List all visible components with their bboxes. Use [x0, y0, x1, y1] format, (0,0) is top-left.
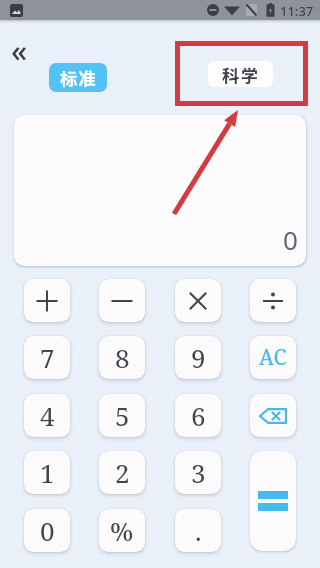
button[interactable]: 4 [24, 394, 70, 437]
staticText: % [110, 513, 134, 548]
button[interactable] [24, 279, 70, 322]
button[interactable] [175, 279, 221, 322]
staticText: 11:37 [280, 2, 314, 20]
staticText: 0 [283, 222, 298, 257]
staticText: 4 [40, 398, 55, 433]
staticText: 2 [115, 455, 130, 490]
button[interactable] [250, 394, 296, 437]
button[interactable]: 5 [99, 394, 145, 437]
staticText: 5 [115, 398, 130, 433]
button[interactable]: 科学 [208, 61, 273, 87]
button[interactable]: « [11, 30, 28, 71]
button[interactable]: AC [250, 336, 296, 379]
button[interactable]: 1 [24, 451, 70, 494]
button[interactable]: 6 [175, 394, 221, 437]
button[interactable]: % [99, 509, 145, 552]
staticText: 9 [191, 340, 206, 375]
button[interactable]: 标准 [49, 63, 107, 92]
button[interactable]: 7 [24, 336, 70, 379]
staticText: 7 [40, 340, 55, 375]
staticText: AC [259, 343, 287, 372]
staticText: 8 [115, 340, 130, 375]
button[interactable] [250, 451, 296, 551]
staticText: . [195, 513, 202, 548]
button[interactable] [250, 279, 296, 322]
staticText: 0 [40, 513, 55, 548]
staticText: 1 [40, 455, 55, 490]
staticText: 科学 [222, 62, 260, 87]
button[interactable]: 2 [99, 451, 145, 494]
staticText: 3 [191, 455, 206, 490]
button[interactable]: 0 [24, 509, 70, 552]
button[interactable]: 9 [175, 336, 221, 379]
staticText: 6 [191, 398, 206, 433]
button[interactable] [99, 279, 145, 322]
button[interactable]: 8 [99, 336, 145, 379]
staticText: 标准 [60, 65, 97, 90]
button[interactable]: . [175, 509, 221, 552]
button[interactable]: 3 [175, 451, 221, 494]
